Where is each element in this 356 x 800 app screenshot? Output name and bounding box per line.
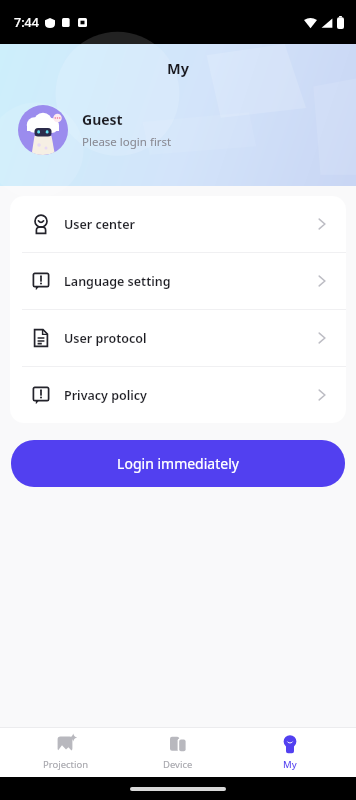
button[interactable]: Projection: [20, 734, 112, 771]
button[interactable]: Login immediately: [11, 440, 345, 487]
staticText: User center: [64, 216, 135, 233]
button[interactable]: Guest: [18, 105, 172, 155]
staticText: Login immediately: [117, 454, 239, 473]
button[interactable]: My: [244, 734, 336, 771]
staticText: User protocol: [64, 330, 147, 347]
staticText: Projection: [43, 758, 89, 771]
button[interactable]: Privacy policy: [10, 367, 346, 423]
staticText: My: [283, 758, 297, 771]
button[interactable]: User protocol: [10, 310, 346, 366]
staticText: Guest: [82, 110, 123, 129]
staticText: My: [167, 58, 189, 78]
button[interactable]: User center: [10, 196, 346, 252]
staticText: 7:44: [14, 14, 39, 31]
staticText: Please login first: [82, 134, 172, 150]
staticText: Privacy policy: [64, 387, 147, 404]
staticText: Language setting: [64, 273, 171, 290]
button[interactable]: Language setting: [10, 253, 346, 309]
staticText: Device: [163, 758, 193, 771]
button[interactable]: Device: [132, 734, 224, 771]
